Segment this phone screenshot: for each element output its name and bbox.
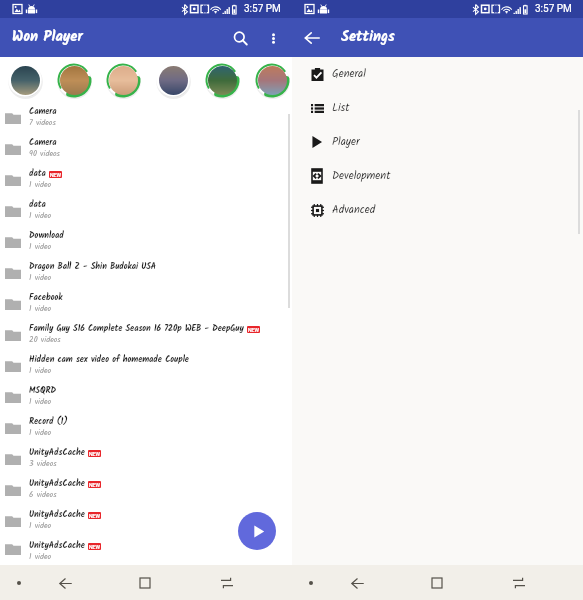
button[interactable]: Family Guy S16 Complete Season 16 720p W… [0,322,292,353]
staticText: General [332,65,366,83]
staticText: data [29,167,46,181]
staticText: data [29,198,46,212]
button[interactable]: Video thumbnail [254,62,290,98]
staticText: Player [332,133,360,151]
button[interactable]: Video thumbnail [56,62,92,98]
staticText: 1 video [29,519,52,532]
staticText: 3:57 PM [535,3,572,15]
button[interactable]: Advanced [292,193,583,227]
staticText: 1 video [29,271,52,284]
button[interactable]: Video thumbnail [7,62,43,98]
button[interactable]: Video thumbnail [105,62,141,98]
staticText: 90 videos [29,147,61,160]
staticText: NEW [89,544,100,550]
button[interactable]: Back [343,569,371,597]
button[interactable]: General [292,57,583,91]
button[interactable]: Switch apps [505,569,533,597]
button[interactable]: Camera [0,136,292,167]
staticText: 1 video [29,550,52,563]
staticText: 3:57 PM [244,3,281,15]
button[interactable]: Record (1) [0,415,292,446]
button[interactable]: Search [225,23,255,53]
staticText: Family Guy S16 Complete Season 16 720p W… [29,322,244,336]
staticText: Development [332,167,391,185]
staticText: NEW [89,451,100,457]
staticText: 1 video [29,364,52,377]
button[interactable]: More options [258,23,288,53]
button[interactable]: Back [51,569,79,597]
button[interactable]: Recents [423,569,451,597]
button[interactable]: Video thumbnail [204,62,240,98]
staticText: Facebook [29,291,63,305]
staticText: NEW [248,327,259,333]
button[interactable]: MSQRD [0,384,292,415]
staticText: UnityAdsCache [29,477,85,491]
button[interactable]: UnityAdsCache [0,446,292,477]
staticText: 7 videos [29,116,56,129]
staticText: UnityAdsCache [29,539,85,553]
staticText: UnityAdsCache [29,446,85,460]
staticText: Won Player [12,26,83,49]
staticText: 3 videos [29,457,57,470]
button[interactable]: Player [292,125,583,159]
staticText: 1 video [29,395,52,408]
staticText: NEW [50,172,61,178]
button[interactable]: Play [238,512,276,550]
staticText: 6 videos [29,488,57,501]
button[interactable]: Switch apps [213,569,241,597]
staticText: UnityAdsCache [29,508,85,522]
staticText: Advanced [332,201,376,219]
button[interactable]: UnityAdsCache [0,477,292,508]
staticText: Download [29,229,64,243]
staticText: Hidden cam sex video of homemade Couple [29,353,189,367]
staticText: NEW [89,482,100,488]
staticText: Settings [341,26,395,49]
button[interactable]: data [0,167,292,198]
button[interactable]: Download [0,229,292,260]
staticText: Camera [29,136,57,150]
button[interactable]: Dragon Ball Z - Shin Budokai USA [0,260,292,291]
button[interactable]: Recents [131,569,159,597]
staticText: NEW [89,513,100,519]
staticText: Camera [29,105,57,119]
staticText: 1 video [29,426,52,439]
staticText: List [332,99,350,117]
button[interactable]: Hide keyboard [5,569,33,597]
button[interactable]: Hidden cam sex video of homemade Couple [0,353,292,384]
staticText: 1 video [29,209,52,222]
staticText: Dragon Ball Z - Shin Budokai USA [29,260,157,274]
button[interactable]: Back [298,24,326,52]
staticText: Record (1) [29,415,68,429]
button[interactable]: UnityAdsCache [0,508,292,539]
button[interactable]: UnityAdsCache [0,539,292,565]
button[interactable]: Hide keyboard [297,569,325,597]
button[interactable]: Development [292,159,583,193]
staticText: MSQRD [29,384,57,398]
staticText: 1 video [29,302,52,315]
staticText: 1 video [29,240,52,253]
button[interactable]: List [292,91,583,125]
button[interactable]: Facebook [0,291,292,322]
button[interactable]: Camera [0,105,292,136]
staticText: 1 video [29,178,52,191]
button[interactable]: Video thumbnail [155,62,191,98]
staticText: 20 videos [29,333,61,346]
button[interactable]: data [0,198,292,229]
